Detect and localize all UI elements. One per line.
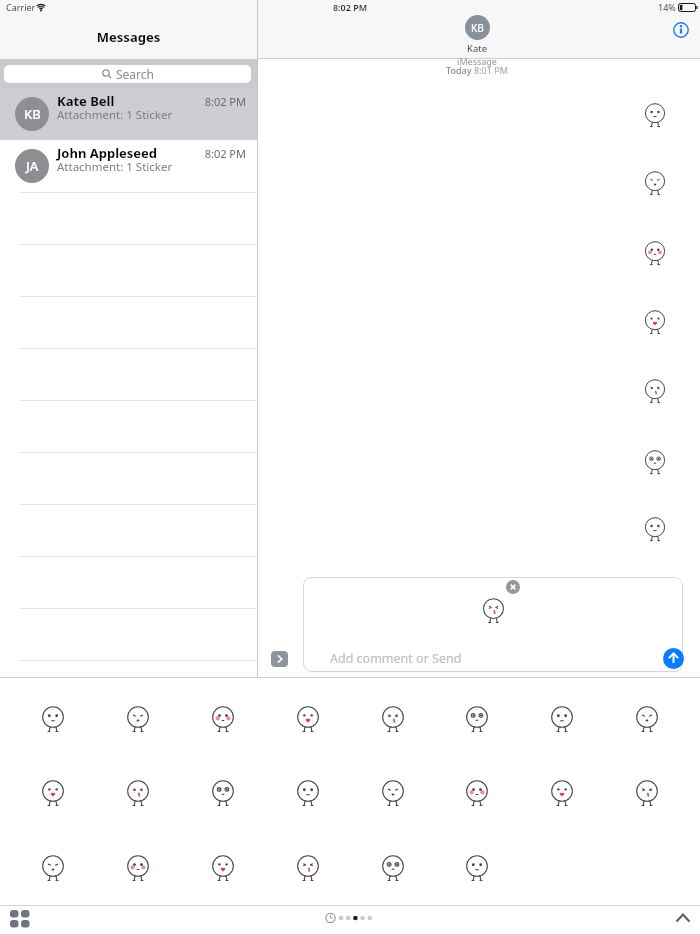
button[interactable] (379, 779, 407, 807)
button[interactable] (39, 779, 67, 807)
staticText: 8:02 PM (140, 146, 246, 161)
button[interactable] (124, 779, 152, 807)
button[interactable] (463, 854, 491, 882)
button[interactable] (506, 580, 520, 594)
button[interactable] (633, 705, 661, 733)
button[interactable] (294, 705, 322, 733)
staticText: KB (471, 21, 484, 35)
staticText: John Appleseed (57, 144, 158, 162)
button[interactable] (124, 854, 152, 882)
button[interactable] (124, 705, 152, 733)
button[interactable] (663, 648, 684, 669)
button[interactable] (672, 908, 694, 926)
button[interactable] (323, 911, 377, 925)
staticText: 8:02 PM (310, 1, 390, 13)
staticText: JA (26, 157, 39, 175)
button[interactable] (271, 651, 288, 667)
button[interactable] (633, 779, 661, 807)
staticText: Today (446, 64, 474, 76)
button[interactable]: Search (4, 65, 251, 83)
button[interactable] (294, 779, 322, 807)
button[interactable] (379, 854, 407, 882)
staticText: Search (116, 66, 154, 82)
button[interactable] (8, 908, 32, 930)
staticText: Attachment: 1 Sticker (57, 107, 173, 123)
button[interactable]: KB (0, 88, 257, 140)
button[interactable] (548, 779, 576, 807)
staticText: 8:02 PM (140, 94, 246, 109)
button[interactable] (463, 779, 491, 807)
button[interactable] (294, 854, 322, 882)
button[interactable] (39, 854, 67, 882)
staticText: 8:01 PM (474, 64, 508, 76)
staticText: Attachment: 1 Sticker (57, 159, 173, 175)
button[interactable] (548, 705, 576, 733)
staticText: 14% (658, 1, 676, 13)
button[interactable] (209, 779, 237, 807)
staticText: Kate Bell (57, 92, 115, 110)
staticText: Kate (437, 42, 517, 55)
button[interactable] (379, 705, 407, 733)
staticText: KB (24, 105, 41, 123)
staticText: Add comment or Send (330, 650, 462, 667)
staticText: Carrier (6, 1, 36, 13)
staticText: Messages (0, 28, 257, 46)
button[interactable]: JA (0, 140, 257, 192)
button[interactable] (463, 705, 491, 733)
staticText: iMessage (427, 55, 527, 67)
button[interactable] (672, 21, 690, 39)
button[interactable] (209, 854, 237, 882)
button[interactable] (209, 705, 237, 733)
button[interactable] (39, 705, 67, 733)
